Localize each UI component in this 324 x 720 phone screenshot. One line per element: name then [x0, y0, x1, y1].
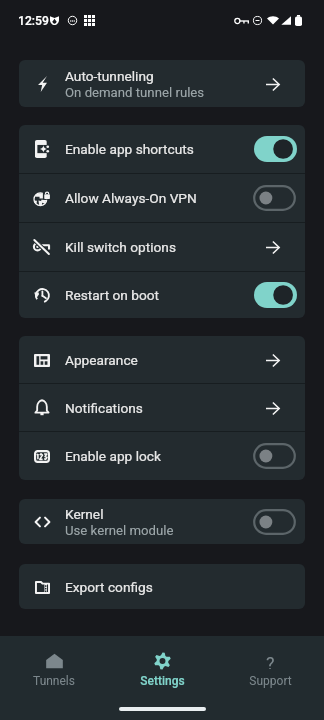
button[interactable]: Enable app lock, off — [253, 443, 296, 469]
button[interactable]: Kill switch options — [19, 223, 305, 271]
staticText: Settings — [140, 674, 185, 688]
button[interactable]: Kernel — [19, 499, 305, 544]
staticText: On demand tunnel rules — [65, 85, 205, 100]
button[interactable]: Notifications — [266, 401, 280, 415]
button[interactable]: Notifications — [19, 384, 305, 431]
staticText: ? — [266, 653, 275, 669]
button[interactable]: Enable app lock — [19, 432, 305, 479]
button[interactable]: Restart on boot, on — [254, 282, 297, 308]
staticText: Kernel — [65, 506, 104, 522]
button[interactable]: Settings — [108, 636, 216, 704]
button[interactable]: Auto-tunneling — [19, 60, 305, 107]
button[interactable]: Appearance — [266, 353, 280, 367]
staticText: Auto-tunneling — [65, 68, 154, 84]
button[interactable]: Tunnels — [0, 636, 108, 704]
staticText: Enable app lock — [65, 448, 161, 464]
staticText: Export configs — [65, 579, 153, 595]
button[interactable]: Restart on boot — [19, 272, 305, 318]
button[interactable]: Allow Always-On VPN — [19, 174, 305, 222]
button[interactable]: Kernel, off — [253, 509, 296, 535]
button[interactable]: Enable app shortcuts — [19, 125, 305, 173]
button[interactable]: Export configs — [19, 564, 305, 609]
staticText: Allow Always-On VPN — [65, 190, 197, 206]
staticText: 12:59 — [18, 14, 49, 28]
staticText: Support — [249, 674, 292, 688]
staticText: Notifications — [65, 400, 143, 416]
staticText: Use kernel module — [65, 523, 174, 538]
staticText: Tunnels — [33, 674, 75, 688]
staticText: Kill switch options — [65, 239, 176, 255]
button[interactable]: Enable app shortcuts, on — [254, 136, 297, 162]
staticText: Restart on boot — [65, 287, 160, 303]
button[interactable]: Allow Always-On VPN, off — [253, 185, 296, 211]
staticText: Enable app shortcuts — [65, 141, 194, 157]
button[interactable]: ? — [216, 636, 324, 704]
button[interactable]: Kill switch options — [266, 240, 280, 254]
button[interactable]: Appearance — [19, 336, 305, 383]
button[interactable]: Auto-tunneling — [266, 77, 280, 91]
staticText: Appearance — [65, 352, 138, 368]
